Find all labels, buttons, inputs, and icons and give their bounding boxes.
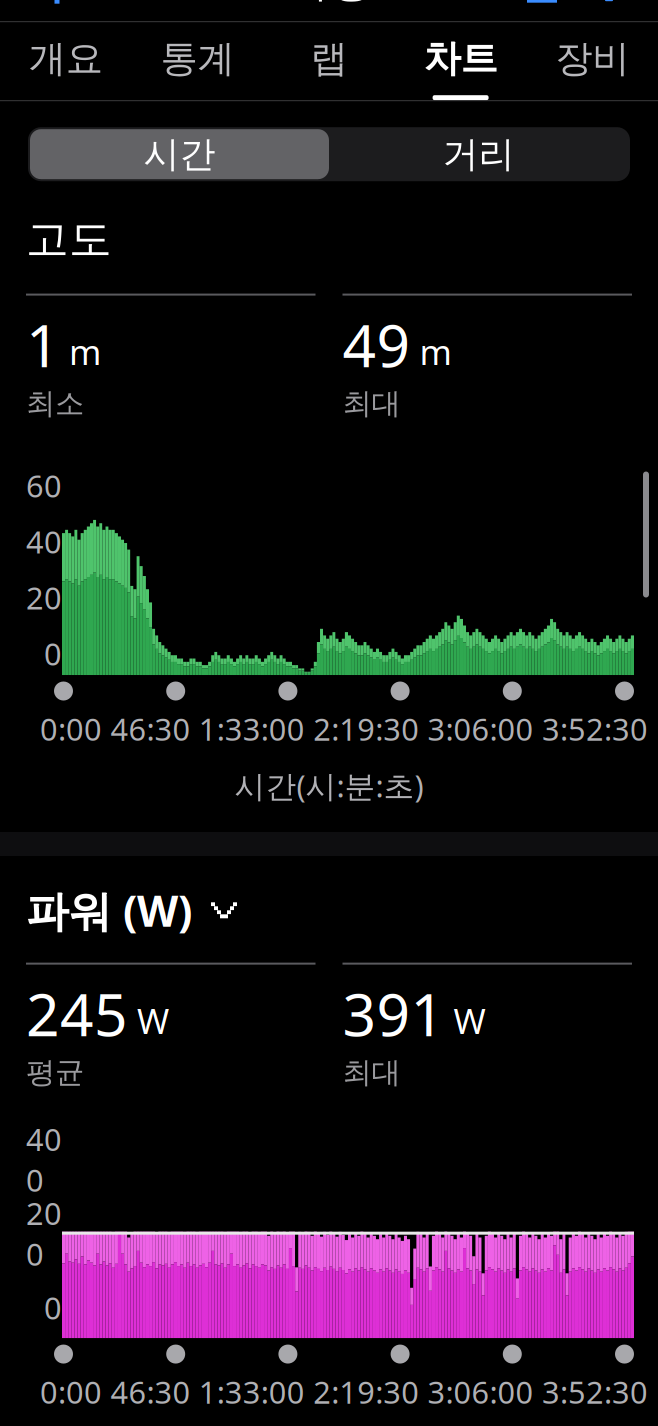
staticText: 391 xyxy=(342,975,444,1052)
button[interactable]: Share xyxy=(506,0,578,20)
staticText: 3:06:00 xyxy=(428,708,534,749)
button[interactable]: Back xyxy=(10,0,88,20)
staticText: 최소 xyxy=(26,385,84,421)
staticText: W xyxy=(453,998,485,1044)
staticText: 1 xyxy=(26,306,60,383)
button[interactable]: 랩 xyxy=(263,22,395,100)
staticText: 3:52:30 xyxy=(542,1372,648,1412)
staticText: 시간 xyxy=(143,132,215,176)
staticText: 통계 xyxy=(160,36,234,82)
button[interactable]: 통계 xyxy=(132,22,263,100)
staticText: 1:33:00 xyxy=(199,1372,305,1412)
staticText: 랩 xyxy=(310,36,347,82)
staticText: 장비 xyxy=(555,36,629,82)
staticText: 파워 (W) xyxy=(26,882,192,939)
staticText: 최대 xyxy=(342,385,400,421)
staticText: 러닝 xyxy=(286,0,372,7)
staticText: 평균 xyxy=(26,1054,84,1090)
button[interactable]: Change metric xyxy=(206,892,242,928)
staticText: 최대 xyxy=(342,1054,400,1090)
staticText: 245 xyxy=(26,975,128,1052)
button[interactable]: 시간 xyxy=(30,129,329,179)
button[interactable]: 거리 xyxy=(329,129,628,179)
staticText: 46:30 xyxy=(110,1372,190,1412)
staticText: 200 xyxy=(26,1193,62,1274)
staticText: 20 xyxy=(26,577,62,618)
staticText: m xyxy=(419,328,451,374)
button[interactable]: 차트 xyxy=(395,22,526,100)
staticText: 1:33:00 xyxy=(199,708,305,749)
staticText: 0:00 xyxy=(40,708,102,749)
button[interactable]: 개요 xyxy=(0,22,132,100)
staticText: 46:30 xyxy=(110,708,190,749)
staticText: 개요 xyxy=(29,36,103,82)
staticText: 49 xyxy=(342,306,410,383)
staticText: 시간(시:분:초) xyxy=(234,765,423,806)
staticText: 거리 xyxy=(442,132,514,176)
staticText: 차트 xyxy=(424,36,498,82)
staticText: 고도 xyxy=(26,213,112,266)
staticText: 40 xyxy=(26,521,62,562)
staticText: 60 xyxy=(26,465,62,506)
staticText: W xyxy=(137,998,169,1044)
staticText: 2:19:30 xyxy=(313,1372,419,1412)
staticText: m xyxy=(69,328,101,374)
staticText: 400 xyxy=(26,1119,62,1200)
button[interactable]: 장비 xyxy=(526,22,658,100)
staticText: 2:19:30 xyxy=(313,708,419,749)
staticText: 3:06:00 xyxy=(428,1372,534,1412)
button[interactable]: More options xyxy=(578,0,640,20)
staticText: 0 xyxy=(44,633,62,674)
staticText: 0:00 xyxy=(40,1372,102,1412)
staticText: 0 xyxy=(44,1287,62,1328)
staticText: 3:52:30 xyxy=(542,708,648,749)
